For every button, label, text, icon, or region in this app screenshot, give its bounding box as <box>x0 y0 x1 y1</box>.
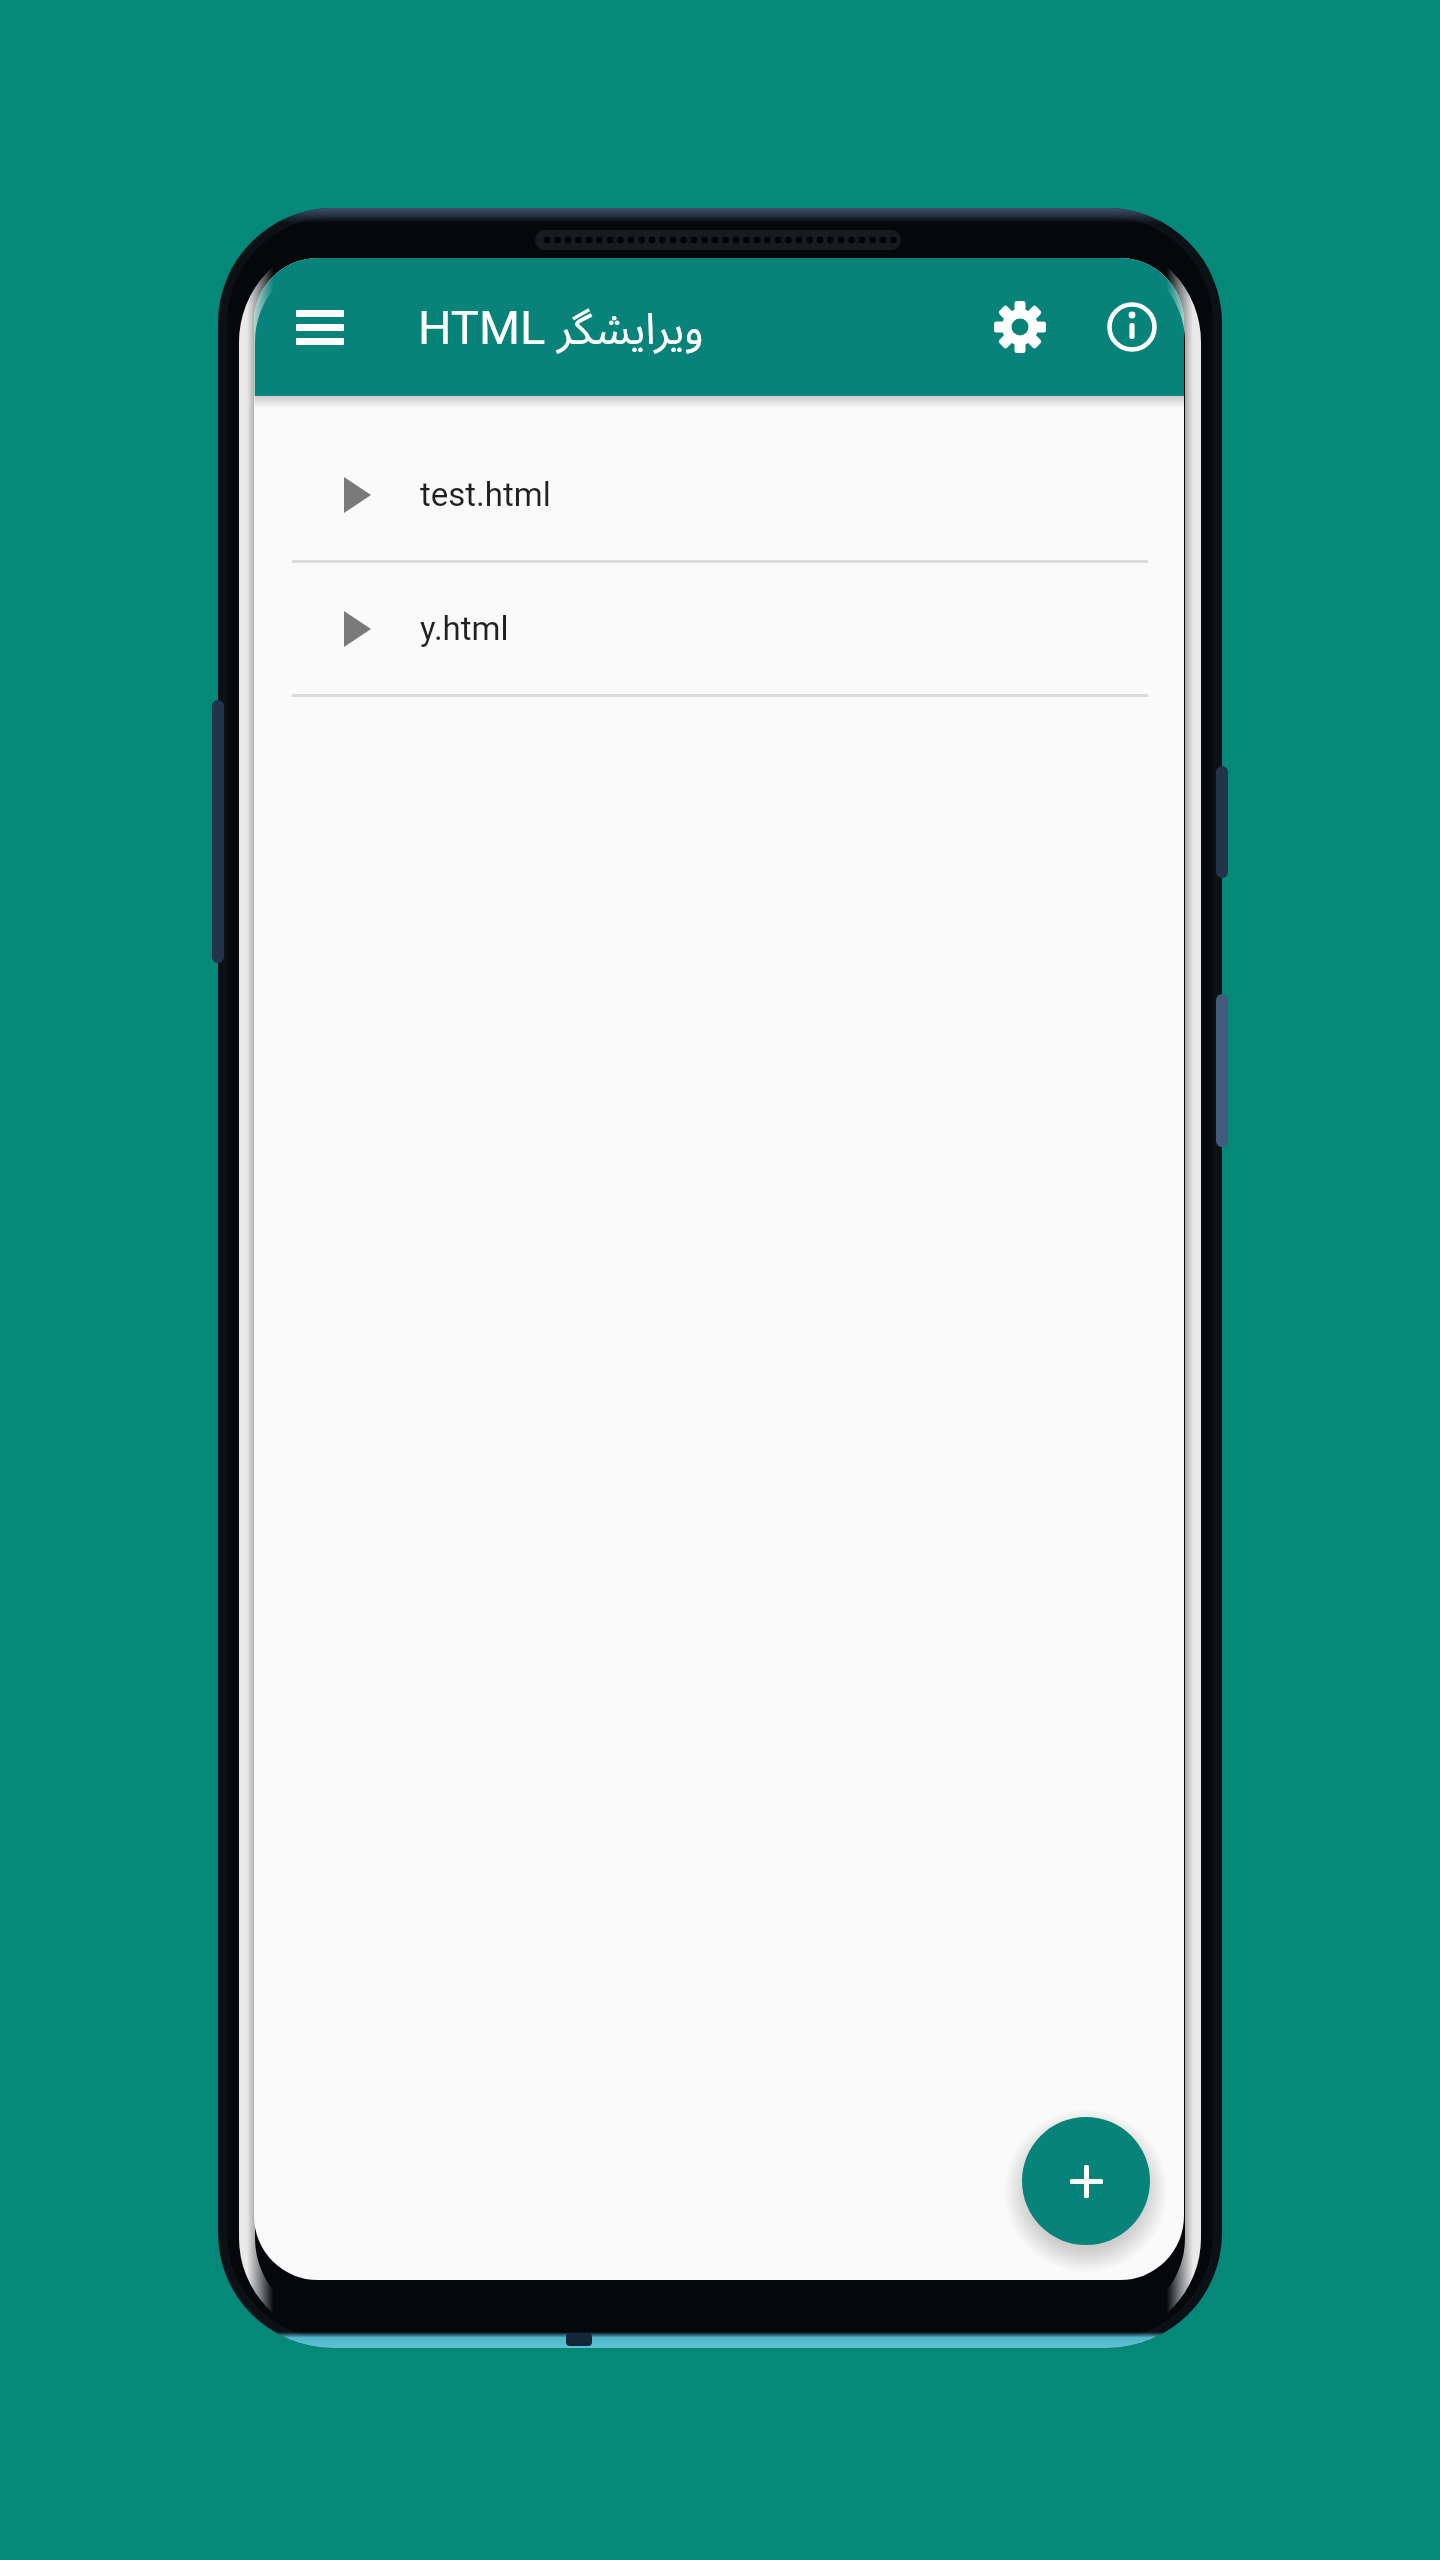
button[interactable] <box>284 294 356 360</box>
staticText: HTML <box>418 300 546 355</box>
button[interactable] <box>990 297 1050 357</box>
button[interactable]: test.html <box>254 429 1184 560</box>
button[interactable] <box>1102 297 1162 357</box>
staticText: test.html <box>420 475 551 514</box>
staticText: y.html <box>420 609 509 648</box>
button[interactable]: y.html <box>254 563 1184 694</box>
staticText: ویرایشگر <box>557 298 704 357</box>
button[interactable] <box>1022 2117 1150 2245</box>
